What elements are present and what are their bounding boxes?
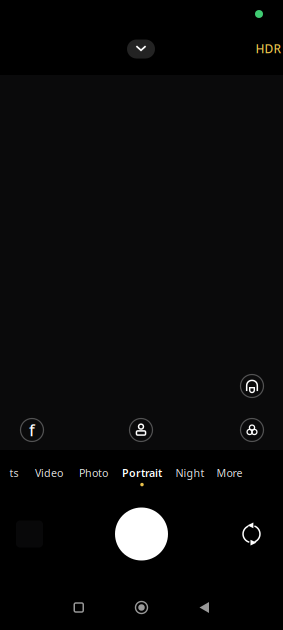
button[interactable]: Back [182,592,226,622]
button[interactable]: Switch camera [231,514,271,554]
button[interactable]: Take photo [115,507,168,560]
button[interactable]: Photo [73,462,114,490]
staticText: HDR [255,40,281,56]
button[interactable]: Last photo [7,512,51,556]
button[interactable]: Night [169,462,210,490]
button[interactable]: ts [3,462,24,490]
button[interactable]: Camera settings [124,36,158,61]
button[interactable]: Video [29,462,69,490]
staticText: ts [9,466,18,480]
staticText: Portrait [122,466,162,480]
staticText: f [29,419,35,441]
button[interactable]: HDR [251,37,283,59]
button[interactable]: Portrait [116,462,168,490]
button[interactable]: Home [119,592,163,622]
staticText: Photo [79,466,108,480]
button[interactable]: Filters [16,414,47,445]
button[interactable]: Subject detection [125,414,156,445]
staticText: Video [35,466,63,480]
button[interactable]: Portrait lighting [236,370,267,401]
button[interactable]: Recent apps [57,592,101,622]
button[interactable]: More [210,462,248,490]
staticText: Night [175,466,204,480]
button[interactable]: Bokeh [236,414,267,445]
staticText: More [216,466,242,480]
